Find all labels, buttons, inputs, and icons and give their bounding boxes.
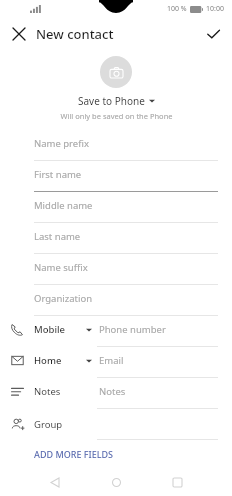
- button[interactable]: Save to Phone: [75, 93, 158, 109]
- staticText: Home: [34, 354, 62, 367]
- staticText: New contact: [36, 25, 114, 43]
- staticText: Phone number: [99, 323, 166, 336]
- staticText: Notes: [99, 385, 126, 398]
- button[interactable]: Close: [6, 21, 32, 47]
- staticText: Last name: [34, 230, 81, 243]
- button[interactable]: Group: [0, 409, 232, 440]
- staticText: Will only be saved on the Phone: [60, 111, 173, 121]
- staticText: 100 %: [167, 4, 187, 14]
- button[interactable]: ADD MORE FIELDS: [0, 440, 232, 468]
- staticText: Name prefix: [34, 137, 89, 150]
- button[interactable]: Name prefix: [0, 130, 232, 161]
- button[interactable]: Organization: [0, 285, 232, 316]
- button[interactable]: Add photo: [100, 56, 132, 88]
- staticText: Name suffix: [34, 261, 88, 274]
- staticText: Mobile: [34, 323, 65, 336]
- button[interactable]: Save: [200, 21, 226, 47]
- button[interactable]: Middle name: [0, 192, 232, 223]
- button[interactable]: First name: [0, 161, 232, 192]
- staticText: ADD MORE FIELDS: [34, 448, 114, 460]
- button[interactable]: Name suffix: [0, 254, 232, 285]
- button[interactable]: Last name: [0, 223, 232, 254]
- button[interactable]: Home: [105, 471, 127, 493]
- staticText: 10:00: [206, 4, 224, 14]
- staticText: Middle name: [34, 199, 93, 212]
- staticText: Save to Phone: [78, 94, 145, 108]
- staticText: Organization: [34, 292, 93, 305]
- staticText: Group: [34, 418, 63, 431]
- button[interactable]: Home: [0, 347, 232, 378]
- staticText: Notes: [34, 385, 61, 398]
- staticText: First name: [34, 168, 82, 181]
- button[interactable]: Notes: [0, 378, 232, 409]
- button[interactable]: Mobile: [0, 316, 232, 347]
- staticText: Email: [99, 354, 124, 367]
- button[interactable]: Back: [44, 471, 66, 493]
- button[interactable]: Recents: [166, 471, 188, 493]
